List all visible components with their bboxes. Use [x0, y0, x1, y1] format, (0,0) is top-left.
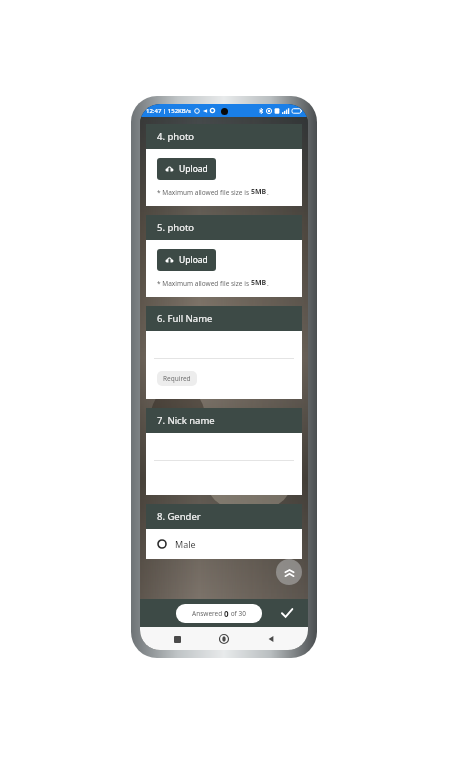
button[interactable]: Answered — [176, 604, 262, 623]
button[interactable]: 8. Gender — [146, 504, 302, 529]
staticText: . — [267, 188, 269, 197]
button[interactable]: Home — [214, 629, 234, 649]
staticText: * Maximum allowed file size is — [157, 279, 251, 288]
button[interactable]: 4. photo — [146, 124, 302, 149]
staticText: of 30 — [229, 609, 246, 618]
button[interactable]: 7. Nick name — [146, 408, 302, 433]
button[interactable]: 6. Full Name — [146, 306, 302, 331]
staticText: 5MB — [251, 187, 267, 197]
staticText: Required — [163, 374, 191, 383]
staticText: 7. Nick name — [157, 414, 215, 427]
button[interactable] — [146, 433, 302, 495]
staticText: Answered — [192, 609, 224, 618]
staticText: Upload — [179, 163, 208, 175]
staticText: Male — [175, 538, 196, 550]
staticText: * Maximum allowed file size is — [157, 188, 251, 197]
staticText: 5. photo — [157, 221, 195, 234]
staticText: 6. Full Name — [157, 312, 213, 325]
staticText: 4. photo — [157, 130, 195, 143]
button[interactable]: Male — [146, 529, 302, 559]
button[interactable]: Upload — [157, 249, 216, 271]
button[interactable]: Recents — [167, 629, 187, 649]
button[interactable]: Scroll to top — [276, 559, 302, 585]
button[interactable]: Upload — [157, 158, 216, 180]
staticText: 5MB — [251, 278, 267, 288]
staticText: Upload — [179, 254, 208, 266]
staticText: 8. Gender — [157, 510, 201, 523]
button[interactable]: Submit — [276, 602, 298, 624]
staticText: 12:47 | 152KB/s — [146, 107, 192, 115]
button[interactable]: Back — [261, 629, 281, 649]
button[interactable]: 5. photo — [146, 215, 302, 240]
button[interactable]: Required — [146, 331, 302, 399]
staticText: . — [267, 279, 269, 288]
staticText: 0 — [224, 608, 229, 619]
